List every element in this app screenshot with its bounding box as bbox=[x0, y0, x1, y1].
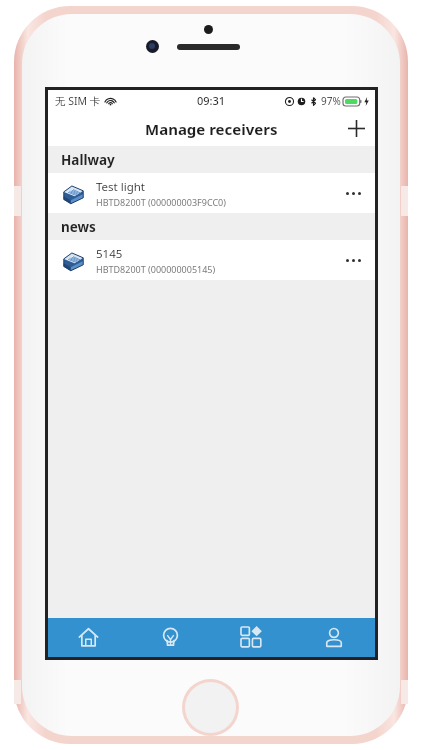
button[interactable]: Add receiver bbox=[337, 111, 375, 146]
staticText: Manage receivers bbox=[145, 119, 278, 139]
button[interactable]: More options bbox=[331, 240, 375, 280]
staticText: Test light bbox=[96, 179, 145, 195]
button[interactable]: Lights bbox=[129, 618, 211, 657]
staticText: news bbox=[61, 218, 96, 236]
staticText: 09:31 bbox=[197, 93, 226, 108]
button[interactable]: Scenes bbox=[211, 618, 293, 657]
button[interactable]: Profile bbox=[293, 618, 375, 657]
button[interactable]: More options bbox=[331, 173, 375, 213]
staticText: HBTD8200T (000000005145) bbox=[96, 263, 216, 275]
staticText: HBTD8200T (000000003F9CC0) bbox=[96, 196, 226, 208]
staticText: 97% bbox=[321, 94, 341, 108]
button[interactable]: Test light bbox=[48, 173, 375, 213]
staticText: Hallway bbox=[61, 151, 115, 169]
button[interactable]: 5145 bbox=[48, 240, 375, 280]
staticText: 5145 bbox=[96, 246, 123, 262]
button[interactable]: Home bbox=[48, 618, 129, 657]
staticText: 无 SIM 卡 bbox=[55, 94, 101, 108]
